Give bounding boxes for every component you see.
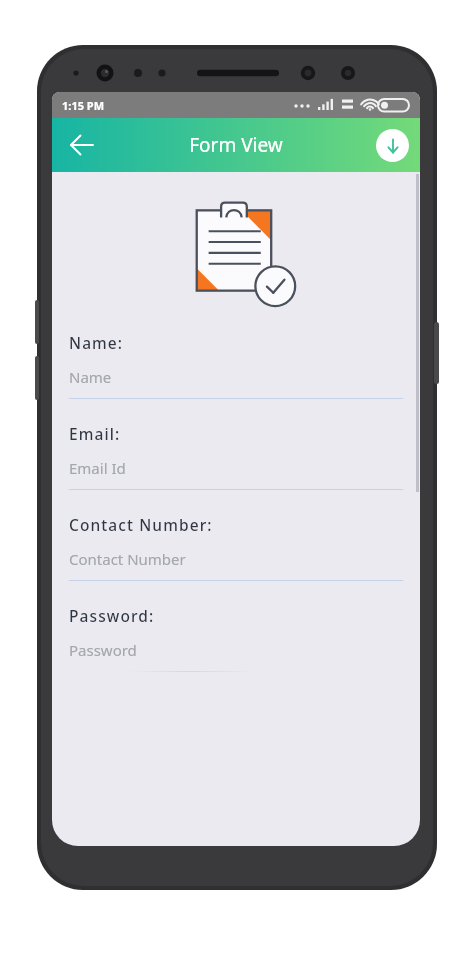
staticText: Contact Number: [69, 549, 186, 569]
button[interactable]: Name:: [69, 332, 403, 399]
staticText: Email Id: [69, 458, 126, 478]
button[interactable]: Contact Number:: [69, 514, 403, 581]
button[interactable]: Back: [60, 123, 104, 167]
button[interactable]: Email:: [69, 423, 403, 490]
button[interactable]: Password:: [69, 605, 403, 672]
staticText: Form View: [189, 132, 283, 158]
staticText: 1:15 PM: [62, 98, 105, 113]
staticText: Password:: [69, 605, 155, 626]
staticText: Name:: [69, 332, 124, 353]
staticText: Name: [69, 367, 112, 387]
button[interactable]: Download: [376, 129, 409, 162]
staticText: Email:: [69, 423, 121, 444]
staticText: Contact Number:: [69, 514, 213, 535]
staticText: Password: [69, 640, 137, 660]
